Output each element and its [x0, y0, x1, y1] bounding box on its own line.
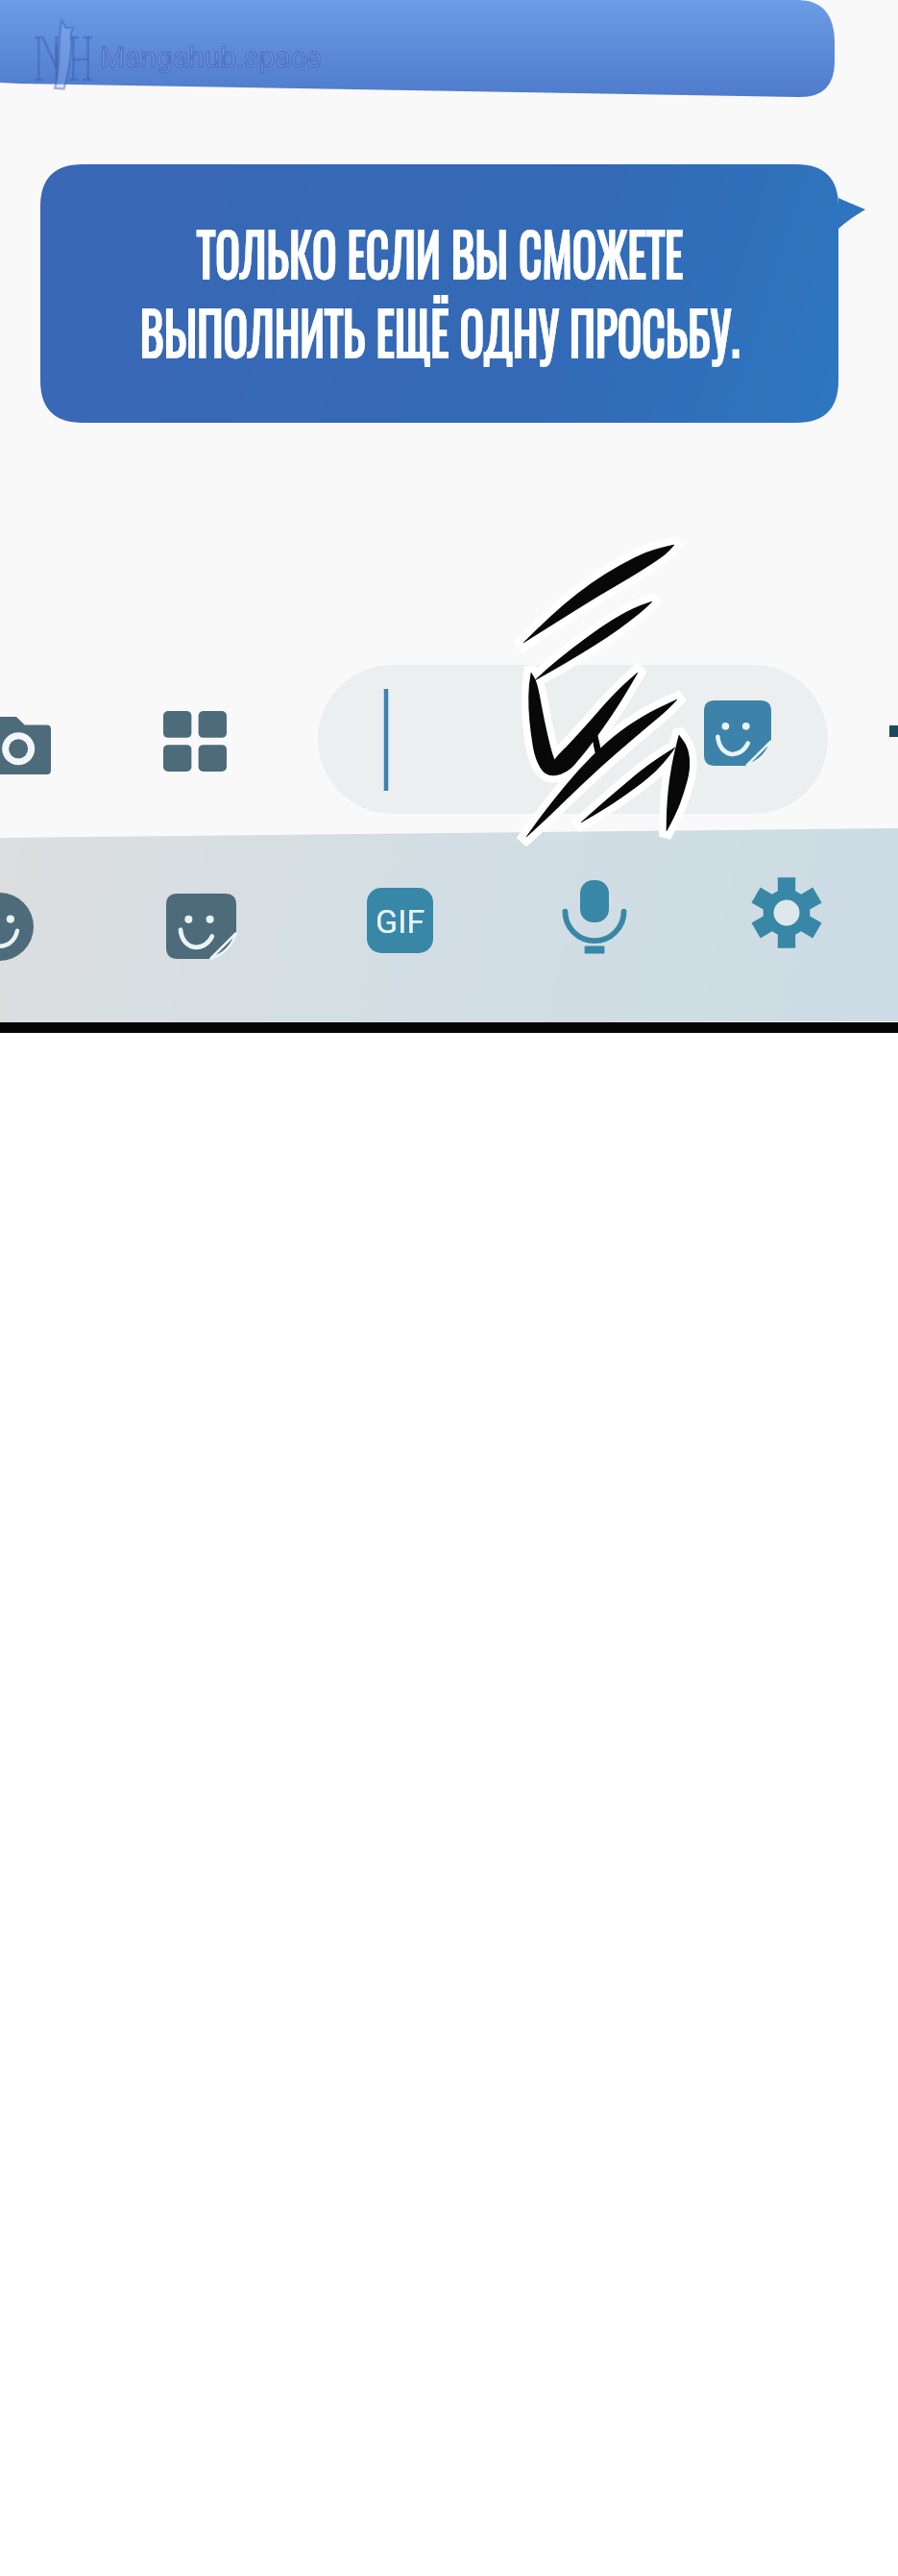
button[interactable]: GIF keyboard — [367, 888, 433, 954]
staticText: Mangahub.space — [100, 40, 322, 74]
staticText: ТОЛЬКО ЕСЛИ ВЫ СМОЖЕТЕ — [0, 208, 898, 296]
staticText: ВЫПОЛНИТЬ ЕЩЁ ОДНУ ПРОСЬБУ. — [0, 286, 898, 375]
staticText: GIF — [376, 902, 425, 941]
staticText: Mangahub.space — [100, 40, 322, 74]
